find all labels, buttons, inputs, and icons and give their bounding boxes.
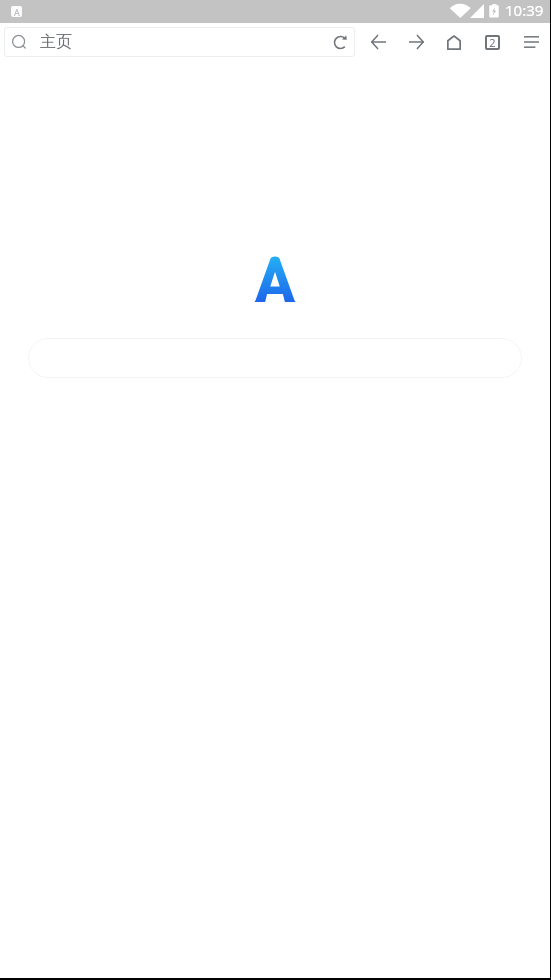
staticText: 主页 (40, 32, 72, 52)
button[interactable]: Menu (516, 27, 546, 57)
staticText: A (14, 6, 20, 17)
staticText: 2 (489, 35, 496, 50)
staticText: 10:39 (505, 0, 544, 20)
button[interactable]: 主页 (4, 27, 355, 57)
button[interactable]: Forward (401, 27, 431, 57)
button[interactable]: Home (439, 27, 469, 57)
button[interactable]: Back (363, 27, 393, 57)
button[interactable]: Tabs (477, 27, 507, 57)
button[interactable]: Reload (325, 27, 355, 57)
button[interactable]: Search box (28, 338, 522, 378)
